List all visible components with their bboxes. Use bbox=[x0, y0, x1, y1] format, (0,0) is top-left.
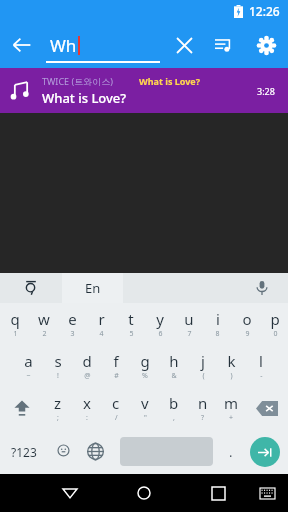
staticText: & bbox=[171, 371, 177, 381]
staticText: : bbox=[86, 413, 88, 423]
staticText: ; bbox=[57, 413, 59, 423]
staticText: ( bbox=[202, 371, 205, 381]
button[interactable]: Back bbox=[0, 23, 44, 67]
button[interactable]: Clear bbox=[164, 25, 204, 65]
button[interactable]: v bbox=[130, 387, 159, 429]
staticText: t bbox=[128, 309, 134, 329]
button[interactable]: Settings bbox=[244, 23, 288, 67]
staticText: c bbox=[112, 393, 120, 413]
staticText: x bbox=[83, 393, 91, 413]
staticText: , bbox=[173, 413, 175, 423]
staticText: ! bbox=[57, 371, 59, 381]
button[interactable]: ?123 bbox=[0, 429, 48, 474]
staticText: / bbox=[115, 413, 118, 423]
button[interactable]: Hide keyboard bbox=[250, 476, 284, 510]
button[interactable]: n bbox=[188, 387, 217, 429]
button[interactable]: Backspace bbox=[246, 387, 288, 429]
staticText: f bbox=[113, 351, 119, 371]
button[interactable]: d bbox=[72, 345, 101, 387]
staticText: g bbox=[140, 351, 150, 371]
staticText: " bbox=[144, 413, 147, 423]
staticText: Wh bbox=[50, 34, 77, 57]
button[interactable]: Enter bbox=[242, 429, 288, 474]
button[interactable]: En bbox=[62, 273, 123, 303]
button[interactable]: z bbox=[43, 387, 72, 429]
button[interactable]: b bbox=[159, 387, 188, 429]
button[interactable]: a bbox=[14, 345, 43, 387]
staticText: 7 bbox=[187, 329, 192, 339]
staticText: i bbox=[216, 309, 220, 329]
button[interactable]: . bbox=[220, 429, 242, 474]
button[interactable]: Change language bbox=[78, 429, 112, 474]
button[interactable]: y bbox=[145, 303, 174, 345]
staticText: p bbox=[270, 309, 280, 329]
staticText: q bbox=[10, 309, 20, 329]
button[interactable]: Shift bbox=[0, 387, 43, 429]
button[interactable]: t bbox=[116, 303, 145, 345]
staticText: s bbox=[54, 351, 62, 371]
staticText: 3:28 bbox=[257, 85, 275, 97]
staticText: m bbox=[224, 393, 239, 413]
button[interactable]: f bbox=[101, 345, 130, 387]
button[interactable]: Recents bbox=[196, 474, 240, 512]
staticText: j bbox=[201, 351, 205, 371]
button[interactable]: p bbox=[261, 303, 288, 345]
staticText: + bbox=[229, 413, 234, 423]
staticText: ) bbox=[230, 371, 233, 381]
button[interactable]: e bbox=[58, 303, 87, 345]
button[interactable]: q bbox=[0, 303, 29, 345]
button[interactable]: TWICE (트와이스) bbox=[0, 68, 288, 113]
staticText: h bbox=[169, 351, 179, 371]
button[interactable]: Emoji bbox=[48, 429, 78, 474]
staticText: l bbox=[259, 351, 263, 371]
staticText: w bbox=[38, 309, 50, 329]
button[interactable]: Voice input bbox=[250, 276, 274, 300]
staticText: TWICE (트와이스) bbox=[42, 75, 113, 87]
staticText: v bbox=[141, 393, 149, 413]
button[interactable] bbox=[112, 437, 220, 466]
staticText: 0 bbox=[273, 329, 278, 339]
button[interactable]: x bbox=[72, 387, 101, 429]
staticText: 1 bbox=[13, 329, 18, 339]
staticText: 5 bbox=[129, 329, 134, 339]
button[interactable]: r bbox=[87, 303, 116, 345]
staticText: % bbox=[142, 371, 148, 381]
staticText: 4 bbox=[99, 329, 104, 339]
staticText: n bbox=[198, 393, 208, 413]
staticText: 2 bbox=[42, 329, 47, 339]
button[interactable]: s bbox=[43, 345, 72, 387]
staticText: a bbox=[24, 351, 33, 371]
button[interactable]: h bbox=[159, 345, 188, 387]
staticText: 8 bbox=[215, 329, 220, 339]
button[interactable]: Playlist bbox=[204, 25, 244, 65]
staticText: @ bbox=[84, 371, 91, 381]
staticText: r bbox=[98, 309, 105, 329]
staticText: b bbox=[169, 393, 179, 413]
button[interactable]: i bbox=[203, 303, 232, 345]
button[interactable]: k bbox=[217, 345, 246, 387]
staticText: z bbox=[54, 393, 62, 413]
staticText: e bbox=[68, 309, 77, 329]
staticText: ?123 bbox=[11, 444, 37, 460]
button[interactable]: Search suggestions bbox=[0, 273, 62, 303]
staticText: What is Love? bbox=[139, 75, 201, 87]
staticText: . bbox=[229, 443, 233, 461]
staticText: # bbox=[114, 371, 119, 381]
staticText: - bbox=[260, 371, 263, 381]
button[interactable]: g bbox=[130, 345, 159, 387]
staticText: 6 bbox=[158, 329, 163, 339]
button[interactable]: w bbox=[29, 303, 58, 345]
button[interactable]: j bbox=[188, 345, 217, 387]
button[interactable]: l bbox=[246, 345, 275, 387]
button[interactable]: c bbox=[101, 387, 130, 429]
button[interactable]: o bbox=[232, 303, 261, 345]
button[interactable]: m bbox=[217, 387, 246, 429]
button[interactable]: Home bbox=[122, 474, 166, 512]
staticText: What is Love? bbox=[42, 89, 127, 107]
button[interactable]: u bbox=[174, 303, 203, 345]
button[interactable]: Back bbox=[48, 474, 92, 512]
staticText: y bbox=[156, 309, 164, 329]
staticText: En bbox=[85, 279, 101, 297]
staticText: k bbox=[227, 351, 236, 371]
staticText: d bbox=[82, 351, 92, 371]
